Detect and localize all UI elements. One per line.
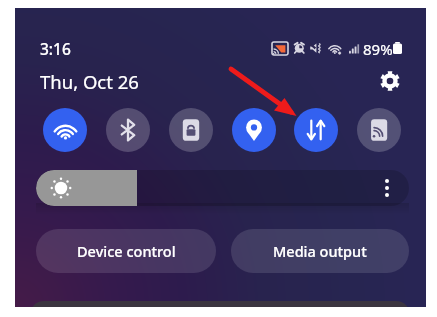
button[interactable]: Mobile data <box>294 108 338 152</box>
button[interactable]: Media output <box>231 229 409 273</box>
button[interactable]: Device lock <box>169 108 213 152</box>
button[interactable]: Brightness <box>36 170 409 206</box>
staticText: 89% <box>363 39 393 59</box>
button[interactable]: Bluetooth <box>106 108 150 152</box>
button[interactable]: Wi-Fi <box>43 108 87 152</box>
staticText: Thu, Oct 26 <box>40 69 139 94</box>
button[interactable]: Notification <box>30 301 410 307</box>
staticText: 3:16 <box>40 38 71 59</box>
staticText: Device control <box>77 241 176 261</box>
button[interactable]: Device control <box>36 229 216 273</box>
button[interactable]: Location <box>232 108 276 152</box>
staticText: Media output <box>273 241 367 261</box>
button[interactable]: Cast <box>357 108 401 152</box>
button[interactable]: Settings <box>371 62 409 100</box>
other: Annotation arrow <box>0 0 437 317</box>
